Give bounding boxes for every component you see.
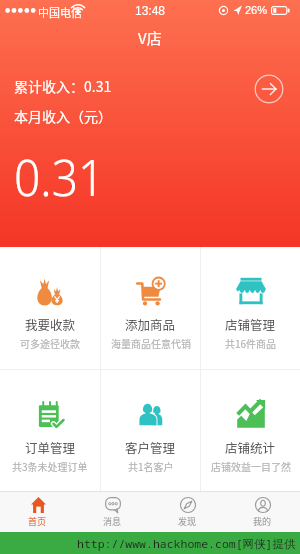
staticText: http://www.hackhome.com[网侠]提供 [77,536,296,552]
staticText: 13:48 [135,4,166,17]
button[interactable]: 消息 [75,492,150,532]
button[interactable]: 发现 [150,492,225,532]
button[interactable]: 订单管理 [0,370,100,491]
staticText: 首页 [28,515,47,528]
staticText: 共3条未处理订单 [12,459,88,473]
button[interactable]: 我要收款 [0,247,100,369]
staticText: 店铺统计 [225,438,276,456]
staticText: 累计收入：0.31 [14,76,112,96]
button[interactable]: 首页 [0,492,75,532]
button[interactable]: 我的 [225,492,300,532]
staticText: 中国电信 [38,4,82,20]
button[interactable]: 店铺管理 [201,247,300,369]
staticText: 店铺管理 [225,315,276,333]
staticText: 订单管理 [25,438,76,456]
staticText: 我的 [253,515,272,528]
staticText: 可多途径收款 [20,336,80,350]
staticText: 我要收款 [25,315,76,333]
button[interactable]: 客户管理 [101,370,200,491]
staticText: 消息 [103,515,122,528]
staticText: 共1名客户 [128,459,174,473]
staticText: 海量商品任意代销 [111,336,191,350]
staticText: 发现 [178,515,197,528]
button[interactable]: 添加商品 [101,247,200,369]
staticText: 店铺效益一目了然 [211,459,291,473]
staticText: 客户管理 [125,438,176,456]
staticText: 共16件商品 [225,336,277,350]
staticText: 0.31 [14,144,105,211]
staticText: 26% [245,4,268,16]
staticText: 本月收入（元） [14,106,112,126]
button[interactable]: 店铺统计 [201,370,300,491]
staticText: 添加商品 [125,315,176,333]
button[interactable]: 收入明细 [254,74,284,104]
staticText: V店 [138,27,162,49]
